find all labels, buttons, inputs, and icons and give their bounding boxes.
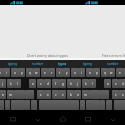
button[interactable]: z xyxy=(112,90,119,99)
button[interactable]: Enter xyxy=(86,100,100,110)
staticText: typing xyxy=(8,62,17,66)
button[interactable]: Shift xyxy=(100,90,109,99)
button[interactable]: w xyxy=(108,68,115,77)
button[interactable]: Symbols xyxy=(100,100,105,110)
button[interactable]: p xyxy=(18,68,25,77)
button[interactable]: m xyxy=(7,90,14,99)
button[interactable]: typos xyxy=(50,60,75,68)
button[interactable]: j xyxy=(0,79,6,88)
staticText: m xyxy=(9,93,12,97)
staticText: w xyxy=(35,71,38,75)
button[interactable]: h xyxy=(67,79,74,88)
button[interactable]: z xyxy=(37,90,44,99)
button[interactable]: l xyxy=(14,79,21,88)
button[interactable]: e xyxy=(41,68,48,77)
button[interactable]: q xyxy=(26,68,33,77)
button[interactable]: b xyxy=(67,90,74,99)
button[interactable]: u xyxy=(0,68,3,77)
button[interactable]: Voice input xyxy=(106,100,112,110)
staticText: typos xyxy=(58,62,67,66)
button[interactable]: n xyxy=(0,90,6,99)
button[interactable]: typing xyxy=(0,60,25,68)
button[interactable]: a xyxy=(104,79,111,88)
button[interactable]: Recent apps xyxy=(8,112,18,125)
button[interactable]: y xyxy=(63,68,70,77)
button[interactable]: i xyxy=(3,68,10,77)
staticText: x xyxy=(47,93,49,97)
button[interactable]: Space xyxy=(0,100,4,110)
button[interactable]: Home xyxy=(58,112,68,125)
button[interactable]: o xyxy=(11,68,18,77)
button[interactable]: s xyxy=(37,79,44,88)
button[interactable]: Back xyxy=(33,112,43,125)
staticText: a xyxy=(32,82,34,86)
button[interactable]: Enter xyxy=(11,100,25,110)
button[interactable]: a xyxy=(29,79,36,88)
other: Status icons xyxy=(84,0,100,5)
staticText: d xyxy=(47,82,49,86)
button[interactable]: c xyxy=(52,90,59,99)
button[interactable]: typing xyxy=(75,60,100,68)
button[interactable]: Back xyxy=(108,112,118,125)
staticText: u xyxy=(0,71,1,75)
button[interactable]: r xyxy=(123,68,125,77)
button[interactable]: e xyxy=(116,68,123,77)
staticText: k xyxy=(10,82,12,86)
button[interactable]: v xyxy=(59,90,66,99)
button[interactable]: q xyxy=(101,68,108,77)
staticText: s xyxy=(115,82,117,86)
staticText: i xyxy=(6,71,7,75)
button[interactable]: x xyxy=(44,90,51,99)
button[interactable]: Space xyxy=(114,100,125,110)
button[interactable]: Don't worry about typos xyxy=(27,53,99,58)
staticText: r xyxy=(51,71,53,75)
staticText: t xyxy=(59,71,61,75)
staticText: q xyxy=(104,71,106,75)
staticText: o xyxy=(14,71,16,75)
button[interactable]: t xyxy=(56,68,63,77)
staticText: e xyxy=(119,71,121,75)
staticText: u xyxy=(74,71,76,75)
staticText: typing xyxy=(83,62,92,66)
button[interactable]: l xyxy=(89,79,96,88)
staticText: p xyxy=(96,71,98,75)
staticText: z xyxy=(115,93,117,97)
button[interactable]: x xyxy=(119,90,125,99)
button[interactable]: number xyxy=(25,60,50,68)
button[interactable]: Backspace xyxy=(89,90,100,99)
button[interactable]: u xyxy=(71,68,78,77)
button[interactable]: w xyxy=(33,68,40,77)
button[interactable]: . xyxy=(5,100,10,110)
button[interactable]: n xyxy=(74,90,81,99)
button[interactable]: Backspace xyxy=(14,90,25,99)
button[interactable]: Space xyxy=(39,100,79,110)
button[interactable]: Recent apps xyxy=(83,112,93,125)
button[interactable]: g xyxy=(59,79,66,88)
button[interactable]: m xyxy=(82,90,89,99)
button[interactable]: o xyxy=(86,68,93,77)
staticText: a xyxy=(107,82,109,86)
button[interactable]: s xyxy=(112,79,119,88)
button[interactable]: k xyxy=(7,79,14,88)
button[interactable]: . xyxy=(80,100,85,110)
button[interactable]: Voice input xyxy=(31,100,37,110)
button[interactable]: Shift xyxy=(25,90,34,99)
staticText: f xyxy=(55,82,57,86)
button[interactable]: d xyxy=(44,79,51,88)
button[interactable]: p xyxy=(93,68,100,77)
staticText: l xyxy=(92,82,93,86)
button[interactable]: number xyxy=(100,60,125,68)
button[interactable]: f xyxy=(52,79,59,88)
staticText: s xyxy=(40,82,42,86)
button[interactable]: Symbols xyxy=(25,100,30,110)
button[interactable]: j xyxy=(74,79,81,88)
staticText: j xyxy=(77,82,78,86)
button[interactable]: d xyxy=(119,79,125,88)
button[interactable]: r xyxy=(48,68,55,77)
button[interactable]: i xyxy=(78,68,85,77)
button[interactable]: k xyxy=(82,79,89,88)
staticText: number xyxy=(32,62,44,66)
button[interactable]: Fixes errors for you xyxy=(102,53,125,58)
staticText: h xyxy=(70,82,72,86)
